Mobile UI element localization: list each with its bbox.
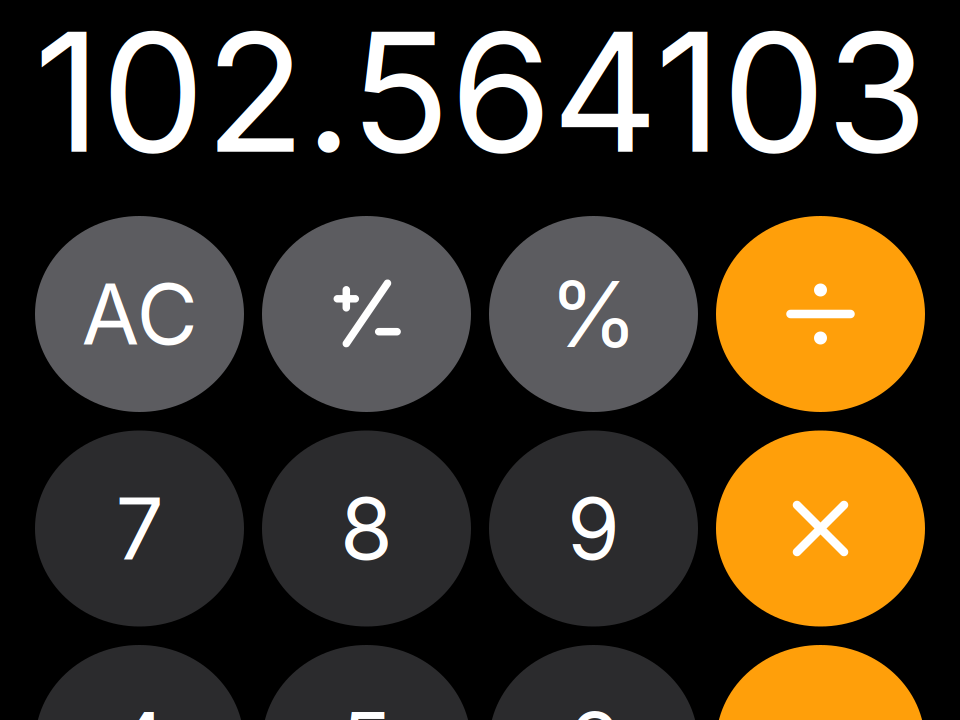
staticText: 102.564103 — [34, 0, 928, 192]
staticText: 5 — [340, 691, 392, 720]
button[interactable]: 4 — [35, 645, 244, 720]
button[interactable]: Divide — [716, 216, 925, 412]
button[interactable]: Minus — [716, 645, 925, 720]
button[interactable]: AC — [35, 216, 244, 412]
staticText: 4 — [112, 691, 167, 720]
staticText: % — [549, 259, 638, 369]
staticText: AC — [81, 263, 197, 365]
button[interactable]: % — [489, 216, 698, 412]
button[interactable]: 5 — [262, 645, 471, 720]
button[interactable]: Multiply — [716, 430, 925, 626]
button[interactable]: 7 — [35, 430, 244, 626]
staticText: 8 — [340, 477, 393, 580]
staticText: 9 — [567, 477, 620, 580]
button[interactable]: Plus minus — [262, 216, 471, 412]
staticText: 7 — [115, 477, 163, 580]
staticText: 6 — [567, 691, 620, 720]
button[interactable]: 8 — [262, 430, 471, 626]
button[interactable]: 6 — [489, 645, 698, 720]
button[interactable]: 9 — [489, 430, 698, 626]
